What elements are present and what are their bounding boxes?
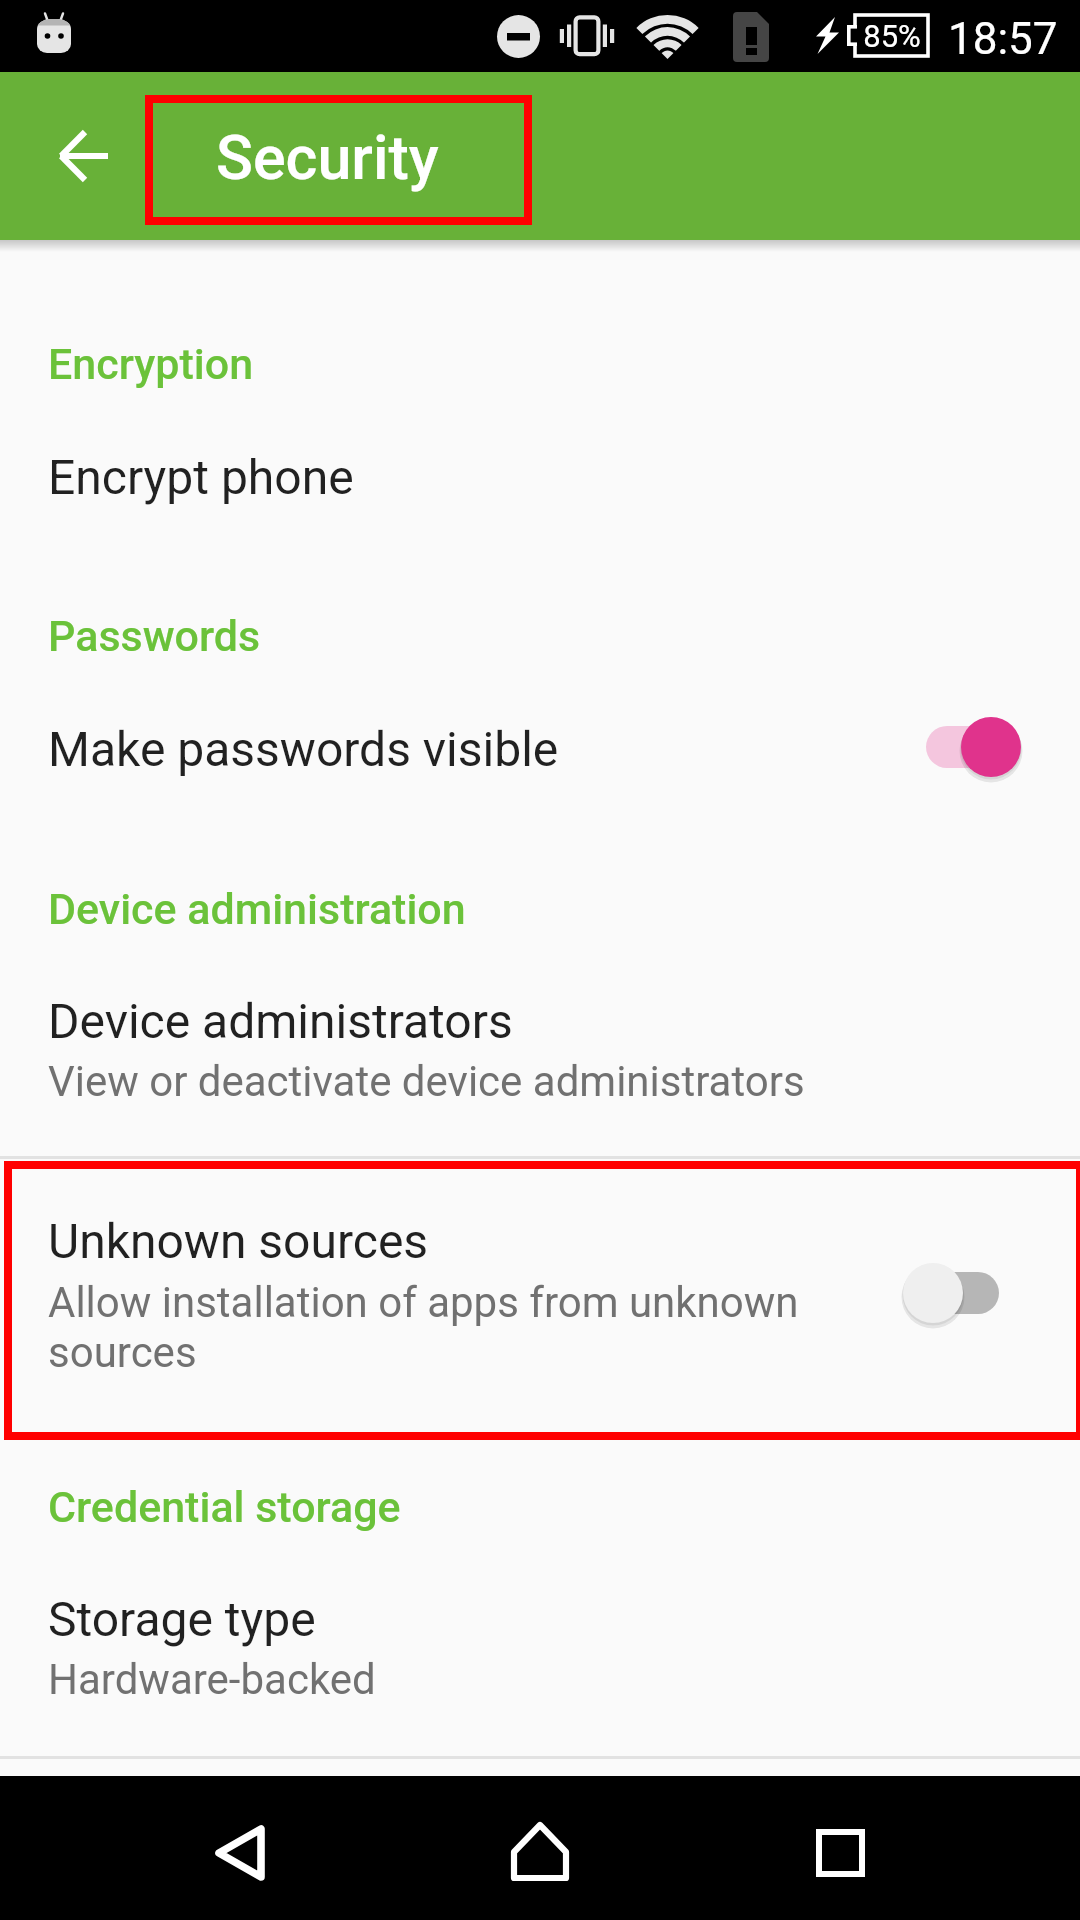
staticText: Allow installation of apps from unknown … <box>48 1278 858 1377</box>
staticText: Storage type <box>48 1591 316 1647</box>
button[interactable]: Recent apps <box>788 1801 893 1905</box>
staticText: Make passwords visible <box>48 721 559 777</box>
staticText: Device administration <box>48 884 466 934</box>
staticText: 85% <box>860 18 924 54</box>
staticText: Hardware-backed <box>48 1655 1048 1704</box>
staticText: Passwords <box>48 611 261 661</box>
button[interactable]: Navigate up <box>30 116 138 196</box>
staticText: 18:57 <box>948 13 1058 65</box>
staticText: Encrypt phone <box>48 449 354 505</box>
button[interactable]: Passwords <box>0 562 1080 808</box>
staticText: Credential storage <box>48 1482 401 1532</box>
staticText: Encryption <box>48 339 254 389</box>
staticText: Unknown sources <box>48 1213 429 1269</box>
button[interactable]: Back <box>187 1797 293 1909</box>
button[interactable]: Home <box>483 1794 597 1909</box>
button[interactable]: Credential storage <box>0 1442 1080 1730</box>
staticText: View or deactivate device administrators <box>48 1057 1048 1106</box>
staticText: Device administrators <box>48 993 513 1049</box>
button[interactable]: Unknown sources <box>0 1161 1080 1440</box>
button[interactable]: Encryption <box>0 290 1080 536</box>
button[interactable]: Device administration <box>0 834 1080 1122</box>
staticText: Security <box>216 122 439 193</box>
